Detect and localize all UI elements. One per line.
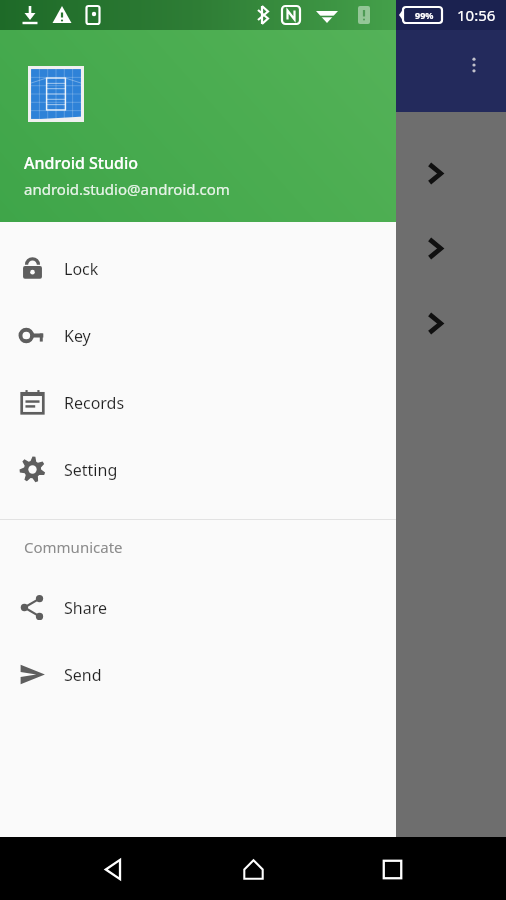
button[interactable]: Records	[0, 369, 396, 436]
staticText: Communicate	[24, 537, 123, 557]
button[interactable]: Lock	[0, 235, 396, 302]
staticText: Key	[64, 325, 91, 347]
button[interactable]: Expand item	[411, 150, 457, 196]
button[interactable]: Share	[0, 574, 396, 641]
staticText: Lock	[64, 258, 99, 280]
staticText: 99%	[415, 9, 434, 21]
button[interactable]: Back	[89, 844, 139, 894]
button[interactable]: Home	[228, 844, 278, 894]
button[interactable]: Recents	[367, 844, 417, 894]
button[interactable]: Expand item	[411, 300, 457, 346]
button[interactable]: Send	[0, 641, 396, 708]
button[interactable]: Setting	[0, 436, 396, 503]
staticText: Android Studio	[24, 152, 139, 174]
button[interactable]: More options	[457, 48, 491, 82]
staticText: Send	[64, 664, 102, 686]
staticText: android.studio@android.com	[24, 179, 230, 199]
staticText: Setting	[64, 459, 118, 481]
staticText: Records	[64, 392, 125, 414]
button[interactable]: Key	[0, 302, 396, 369]
staticText: 10:56	[457, 5, 496, 25]
button[interactable]: Expand item	[411, 225, 457, 271]
staticText: Share	[64, 597, 107, 619]
